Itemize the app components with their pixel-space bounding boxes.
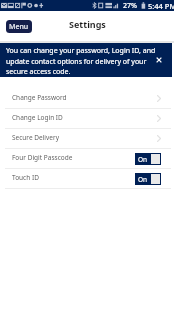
staticText: Settings — [69, 18, 106, 30]
staticText: On — [138, 175, 148, 184]
staticText: 27% — [123, 1, 137, 11]
staticText: 5:44 PM — [148, 1, 174, 11]
staticText: Menu — [9, 22, 29, 32]
button[interactable]: Change Login ID — [0, 109, 174, 129]
button[interactable]: Four Digit Passcode — [0, 149, 174, 169]
staticText: Four Digit Passcode — [12, 153, 73, 162]
button[interactable]: Menu — [6, 20, 32, 33]
button[interactable]: Touch ID toggle, On — [135, 173, 161, 185]
button[interactable]: Four Digit Passcode toggle, On — [135, 153, 161, 165]
button[interactable]: Close — [156, 57, 162, 63]
staticText: Change Password — [12, 93, 67, 102]
staticText: Change Login ID — [12, 113, 63, 122]
staticText: Touch ID — [12, 173, 39, 182]
staticText: On — [138, 155, 148, 164]
button[interactable]: Secure Delivery — [0, 129, 174, 149]
staticText: You can change your password, Login ID, … — [6, 46, 159, 76]
button[interactable]: Touch ID — [0, 169, 174, 189]
staticText: Secure Delivery — [12, 133, 60, 142]
button[interactable]: Change Password — [0, 89, 174, 109]
